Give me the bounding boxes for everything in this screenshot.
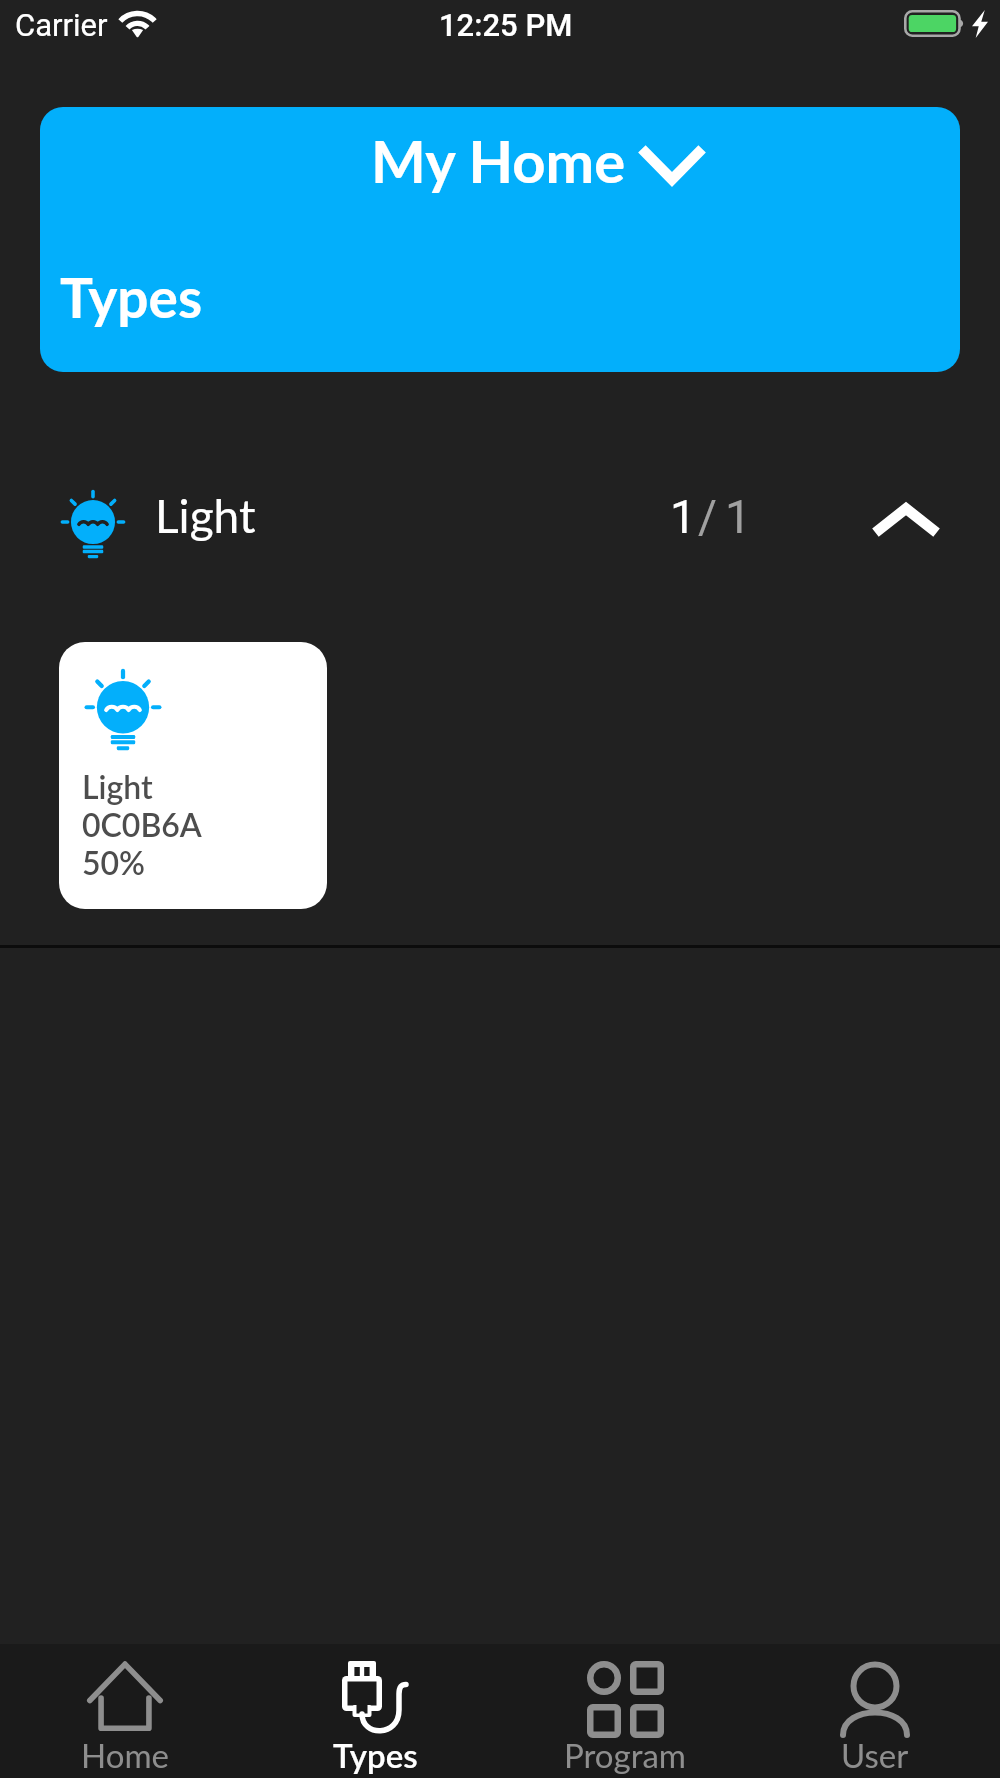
staticText: 50% — [82, 843, 146, 881]
button[interactable]: Home — [0, 1644, 250, 1778]
staticText: Light — [82, 767, 153, 805]
staticText: User — [841, 1735, 909, 1775]
button[interactable]: My Home — [371, 132, 706, 202]
other: Collapse — [872, 501, 940, 537]
staticText: 1 — [725, 490, 751, 544]
staticText: 12:25 PM — [439, 7, 573, 43]
staticText: Types — [60, 264, 203, 330]
staticText: Home — [81, 1735, 169, 1775]
staticText: Types — [333, 1735, 418, 1775]
staticText: Program — [564, 1735, 686, 1775]
button[interactable]: Types — [250, 1644, 500, 1778]
staticText: 1 — [670, 490, 696, 544]
staticText: Carrier — [15, 7, 108, 43]
button[interactable]: Light — [0, 460, 1000, 576]
staticText: 0C0B6A — [82, 805, 202, 843]
button[interactable]: User — [750, 1644, 1000, 1778]
other: Charging — [972, 10, 988, 38]
staticText: Light — [155, 488, 256, 543]
staticText: My Home — [371, 126, 626, 196]
other: Select home — [638, 145, 706, 187]
button[interactable]: Program — [500, 1644, 750, 1778]
staticText: / — [698, 490, 717, 544]
button[interactable]: Light — [59, 642, 327, 909]
